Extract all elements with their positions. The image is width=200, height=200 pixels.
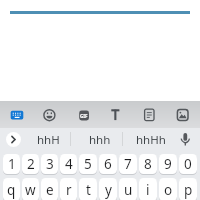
- button[interactable]: 9: [159, 154, 177, 174]
- button[interactable]: e: [41, 178, 58, 200]
- button[interactable]: hhh: [78, 130, 122, 149]
- staticText: 4: [65, 155, 73, 173]
- button[interactable]: 2: [22, 154, 39, 174]
- button[interactable]: [174, 106, 191, 124]
- staticText: 5: [84, 155, 92, 173]
- staticText: 7: [124, 155, 132, 173]
- button[interactable]: i: [139, 178, 157, 200]
- button[interactable]: 4: [60, 154, 77, 174]
- staticText: hhh: [89, 132, 111, 148]
- button[interactable]: 0: [179, 154, 197, 174]
- button[interactable]: u: [119, 178, 137, 200]
- button[interactable]: [8, 106, 26, 124]
- staticText: r: [66, 181, 72, 199]
- button[interactable]: [6, 132, 21, 147]
- staticText: 9: [164, 155, 172, 173]
- staticText: p: [184, 181, 193, 199]
- button[interactable]: q: [3, 178, 20, 200]
- staticText: hhHh: [136, 132, 166, 148]
- staticText: u: [124, 181, 133, 199]
- staticText: GIF: [80, 113, 88, 119]
- staticText: y: [105, 181, 112, 199]
- button[interactable]: 5: [79, 154, 97, 174]
- button[interactable]: 8: [139, 154, 157, 174]
- staticText: e: [46, 181, 54, 199]
- staticText: 8: [144, 155, 152, 173]
- staticText: 0: [184, 155, 192, 173]
- staticText: 2: [27, 155, 35, 173]
- button[interactable]: w: [22, 178, 39, 200]
- button[interactable]: y: [99, 178, 117, 200]
- button[interactable]: [141, 106, 158, 124]
- button[interactable]: o: [159, 178, 177, 200]
- button[interactable]: 3: [41, 154, 58, 174]
- staticText: w: [25, 181, 36, 199]
- button[interactable]: r: [60, 178, 77, 200]
- button[interactable]: 1: [3, 154, 20, 174]
- staticText: t: [86, 181, 91, 199]
- staticText: o: [164, 181, 173, 199]
- staticText: q: [7, 181, 16, 199]
- button[interactable]: t: [79, 178, 97, 200]
- button[interactable]: 7: [119, 154, 137, 174]
- button[interactable]: hhH: [26, 130, 70, 149]
- button[interactable]: [177, 130, 195, 149]
- staticText: 6: [104, 155, 112, 173]
- staticText: 1: [8, 155, 16, 173]
- button[interactable]: 6: [99, 154, 117, 174]
- staticText: 3: [46, 155, 54, 173]
- button[interactable]: hhHh: [129, 130, 173, 149]
- button[interactable]: GIF: [79, 111, 89, 121]
- staticText: hhH: [37, 132, 60, 148]
- button[interactable]: p: [179, 178, 197, 200]
- button[interactable]: [107, 106, 124, 124]
- staticText: i: [146, 181, 150, 199]
- button[interactable]: [41, 106, 58, 124]
